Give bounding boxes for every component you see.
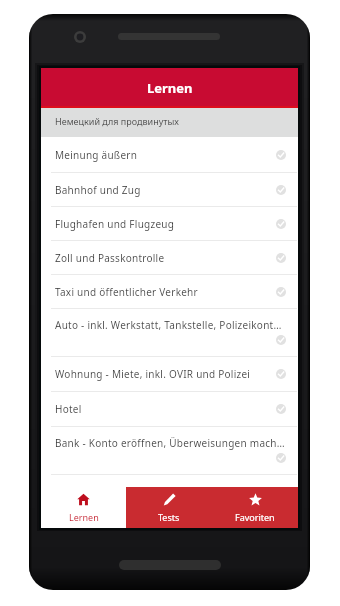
other: Completed bbox=[276, 335, 286, 345]
other: Completed bbox=[276, 150, 286, 160]
button[interactable]: Zoll und Passkontrolle bbox=[41, 241, 298, 275]
button[interactable]: Hotel bbox=[41, 392, 298, 427]
other: Completed bbox=[276, 404, 286, 414]
other: Completed bbox=[276, 369, 286, 379]
staticText: Meinung äußern bbox=[55, 148, 138, 162]
other: Completed bbox=[276, 253, 286, 263]
staticText: Bahnhof und Zug bbox=[55, 183, 141, 197]
staticText: Flughafen und Flugzeug bbox=[55, 217, 175, 231]
staticText: Lernen bbox=[69, 511, 99, 523]
staticText: Zoll und Passkontrolle bbox=[55, 251, 165, 265]
other: Completed bbox=[276, 287, 286, 297]
button[interactable]: Tests bbox=[126, 487, 212, 528]
other: Completed bbox=[276, 219, 286, 229]
other: Completed bbox=[276, 185, 286, 195]
button[interactable]: Flughafen und Flugzeug bbox=[41, 207, 298, 241]
staticText: Bank - Konto eröffnen, Überweisungen mac… bbox=[55, 436, 285, 450]
other: Tests bbox=[163, 493, 176, 506]
staticText: Немецкий для продвинутых bbox=[55, 115, 179, 127]
staticText: Hotel bbox=[55, 402, 82, 416]
staticText: Taxi und öffentlicher Verkehr bbox=[55, 285, 198, 299]
button[interactable]: Meinung äußern bbox=[41, 137, 298, 173]
button[interactable]: Auto - inkl. Werkstatt, Tankstelle, Poli… bbox=[41, 309, 298, 357]
other: Lernen bbox=[77, 493, 90, 506]
staticText: Auto - inkl. Werkstatt, Tankstelle, Poli… bbox=[55, 318, 282, 332]
staticText: Wohnung - Miete, inkl. OVIR und Polizei bbox=[55, 367, 251, 381]
button[interactable]: Lernen bbox=[41, 487, 126, 528]
staticText: Tests bbox=[158, 511, 180, 523]
staticText: Favoriten bbox=[235, 511, 275, 523]
button[interactable]: Bahnhof und Zug bbox=[41, 173, 298, 207]
button[interactable]: Wohnung - Miete, inkl. OVIR und Polizei bbox=[41, 357, 298, 392]
button[interactable]: Taxi und öffentlicher Verkehr bbox=[41, 275, 298, 309]
button[interactable]: Favoriten bbox=[212, 487, 298, 528]
button[interactable]: Bank - Konto eröffnen, Überweisungen mac… bbox=[41, 427, 298, 475]
other: Favoriten bbox=[249, 493, 262, 506]
staticText: Lernen bbox=[147, 79, 193, 97]
other: Completed bbox=[276, 453, 286, 463]
